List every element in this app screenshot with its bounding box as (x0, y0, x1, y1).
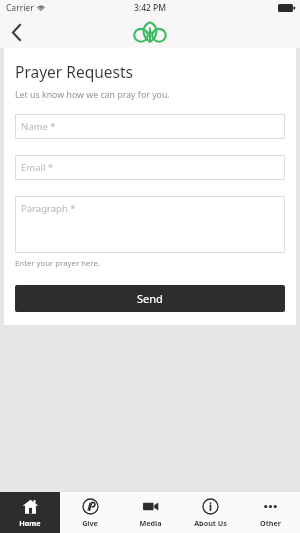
button[interactable]: Other (240, 492, 300, 533)
staticText: Other (260, 518, 281, 528)
button[interactable]: Home (0, 492, 60, 533)
button[interactable]: Media (120, 492, 180, 533)
staticText: Let us know how we can pray for you. (15, 89, 170, 101)
button[interactable]: Send (15, 285, 285, 312)
staticText: Paragraph * (21, 202, 76, 215)
button[interactable]: About Us (180, 492, 240, 533)
staticText: Carrier (6, 2, 34, 14)
button[interactable]: Back (0, 16, 32, 48)
button[interactable]: Name * (15, 114, 285, 139)
button[interactable]: Paragraph * (15, 196, 285, 253)
staticText: Prayer Requests (15, 61, 133, 82)
staticText: Enter your prayer here. (15, 258, 100, 269)
staticText: Email * (21, 161, 54, 174)
button[interactable]: Home logo (130, 19, 170, 45)
staticText: Name * (21, 120, 56, 133)
staticText: 3:42 PM (134, 2, 167, 14)
button[interactable]: Email * (15, 155, 285, 180)
staticText: Media (139, 518, 162, 528)
staticText: Give (82, 518, 98, 528)
button[interactable]: Give (60, 492, 120, 533)
staticText: About Us (194, 518, 227, 528)
staticText: Home (19, 518, 41, 528)
staticText: Send (137, 291, 163, 306)
